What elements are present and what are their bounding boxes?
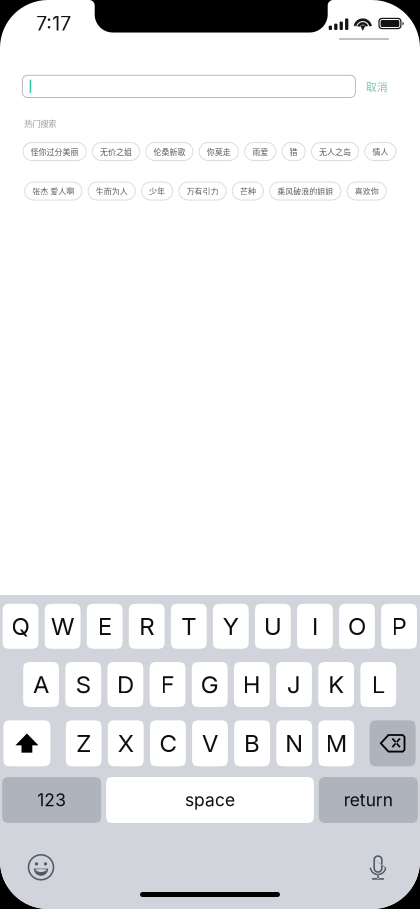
button[interactable]: N <box>276 720 312 766</box>
button[interactable]: H <box>234 662 270 707</box>
staticText: J <box>287 670 301 699</box>
staticText: 你莫走 <box>207 146 231 157</box>
button[interactable]: U <box>255 604 291 649</box>
button[interactable]: I <box>297 604 333 649</box>
staticText: P <box>391 612 406 641</box>
staticText: 7:17 <box>36 12 71 35</box>
button[interactable]: M <box>318 720 354 766</box>
staticText: 123 <box>37 789 66 810</box>
button[interactable]: O <box>339 604 375 649</box>
button[interactable]: A <box>23 662 59 707</box>
staticText: T <box>181 612 196 641</box>
staticText: B <box>244 729 260 758</box>
staticText: M <box>326 729 347 758</box>
button[interactable]: W <box>45 604 80 649</box>
staticText: Y <box>223 612 239 641</box>
staticText: K <box>328 670 344 699</box>
staticText: V <box>202 729 218 758</box>
button[interactable]: 喜欢你 <box>347 182 386 200</box>
staticText: A <box>33 670 49 699</box>
staticText: F <box>160 670 174 699</box>
staticText: return <box>344 789 393 810</box>
staticText: 芒种 <box>240 185 256 197</box>
staticText: 少年 <box>149 185 165 197</box>
button[interactable]: 张杰 爱人啊 <box>25 182 82 200</box>
button[interactable]: D <box>107 662 143 707</box>
staticText: 雨爱 <box>252 146 268 157</box>
staticText: 生而为人 <box>96 185 128 197</box>
staticText: N <box>285 729 303 758</box>
button[interactable]: 雨爱 <box>245 142 276 160</box>
button[interactable]: J <box>276 662 312 707</box>
staticText: 伦桑新歌 <box>153 146 185 157</box>
staticText: space <box>185 789 235 810</box>
staticText: 无人之岛 <box>319 146 351 157</box>
staticText: C <box>159 729 176 758</box>
staticText: 热门搜索 <box>24 117 56 129</box>
staticText: H <box>243 670 261 699</box>
button[interactable]: 万有引力 <box>179 182 226 200</box>
button[interactable]: Z <box>66 720 102 766</box>
button[interactable]: B <box>234 720 270 766</box>
button[interactable]: Q <box>3 604 38 649</box>
staticText: X <box>118 729 134 758</box>
staticText: I <box>312 612 318 641</box>
staticText: R <box>139 612 154 641</box>
staticText: 怪你过分美丽 <box>31 146 79 157</box>
button[interactable]: 情人 <box>365 142 396 160</box>
button[interactable]: 猎 <box>282 142 305 160</box>
staticText: S <box>76 670 91 699</box>
button[interactable]: 你莫走 <box>199 142 238 160</box>
staticText: L <box>372 670 385 699</box>
staticText: 万有引力 <box>186 185 218 197</box>
button[interactable]: space <box>106 777 314 823</box>
button[interactable]: L <box>360 662 396 707</box>
staticText: 无价之姐 <box>100 146 132 157</box>
button[interactable]: 芒种 <box>232 182 263 200</box>
staticText: 张杰 爱人啊 <box>32 185 74 197</box>
button[interactable]: Dictation <box>358 847 397 888</box>
button[interactable]: G <box>192 662 228 707</box>
button[interactable]: X <box>108 720 144 766</box>
button[interactable]: 无价之姐 <box>92 142 140 160</box>
staticText: U <box>264 612 282 641</box>
button[interactable]: R <box>129 604 165 649</box>
button[interactable]: P <box>381 604 417 649</box>
button[interactable]: K <box>318 662 354 707</box>
button[interactable]: 少年 <box>141 182 173 200</box>
button[interactable]: 生而为人 <box>88 182 135 200</box>
staticText: E <box>98 612 112 641</box>
button[interactable]: 伦桑新歌 <box>146 142 193 160</box>
staticText: 情人 <box>372 146 388 157</box>
staticText: Z <box>76 729 91 758</box>
staticText: D <box>117 670 134 699</box>
button[interactable]: F <box>150 662 185 707</box>
button[interactable]: C <box>150 720 186 766</box>
button[interactable]: E <box>87 604 123 649</box>
staticText: Q <box>12 612 30 641</box>
button[interactable]: Emoji keyboard <box>19 846 62 889</box>
button[interactable]: return <box>319 777 418 823</box>
button[interactable]: 乘风破浪的姐姐 <box>270 182 341 200</box>
button[interactable]: Delete <box>370 720 416 766</box>
staticText: 取消 <box>366 79 388 94</box>
button[interactable]: 无人之岛 <box>311 142 359 160</box>
button[interactable]: Shift <box>3 720 50 766</box>
staticText: 猎 <box>290 146 298 157</box>
button[interactable]: 怪你过分美丽 <box>23 142 86 160</box>
staticText: 乘风破浪的姐姐 <box>277 185 333 197</box>
button[interactable]: T <box>171 604 207 649</box>
button[interactable]: V <box>192 720 228 766</box>
button[interactable]: S <box>65 662 101 707</box>
staticText: 喜欢你 <box>355 185 379 197</box>
staticText: O <box>348 612 366 641</box>
staticText: W <box>51 612 74 641</box>
staticText: G <box>201 670 219 699</box>
button[interactable]: 123 <box>2 777 101 823</box>
button[interactable]: 取消 <box>362 74 392 99</box>
button[interactable]: Y <box>213 604 249 649</box>
